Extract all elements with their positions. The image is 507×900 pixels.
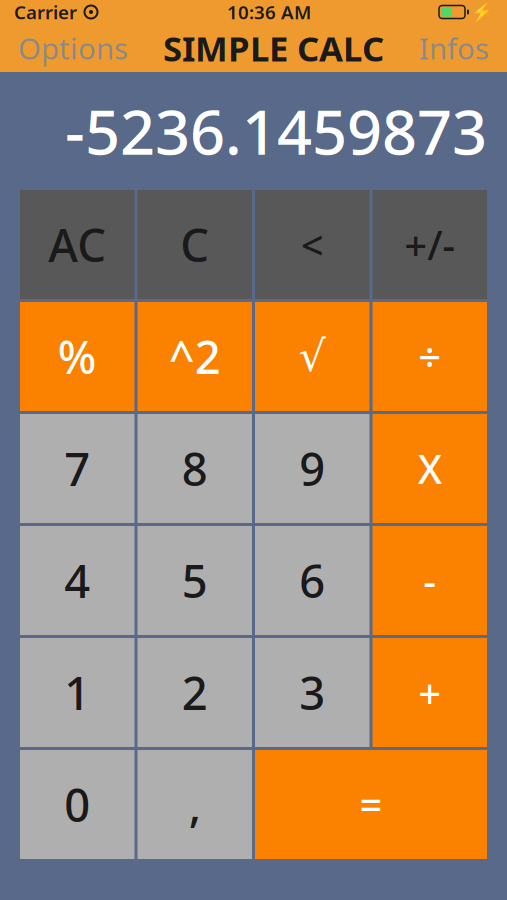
staticText: 0 (64, 774, 90, 835)
staticText: 1 (64, 662, 90, 723)
staticText: +/- (404, 218, 455, 271)
staticText: 4 (64, 550, 90, 611)
staticText: SIMPLE CALC (163, 25, 384, 71)
staticText: ÷ (418, 330, 441, 383)
staticText: , (189, 774, 201, 835)
button[interactable]: 1 (20, 638, 134, 747)
staticText: ⚡ (471, 2, 493, 22)
button[interactable]: 2 (137, 638, 252, 747)
button[interactable]: = (255, 750, 487, 859)
staticText: X (418, 442, 442, 495)
staticText: Carrier (14, 0, 77, 24)
button[interactable]: 9 (255, 414, 369, 523)
staticText: ^2 (169, 326, 221, 387)
button[interactable]: 7 (20, 414, 134, 523)
staticText: 6 (299, 550, 325, 611)
staticText: 8 (182, 438, 208, 499)
staticText: = (359, 778, 382, 831)
button[interactable]: 8 (137, 414, 252, 523)
staticText: Infos (419, 28, 489, 67)
staticText: + (418, 666, 441, 719)
staticText: 9 (299, 438, 325, 499)
button[interactable]: 5 (137, 526, 252, 635)
button[interactable]: + (372, 638, 487, 747)
button[interactable]: AC (20, 190, 134, 299)
staticText: - (423, 554, 436, 607)
staticText: 7 (64, 438, 90, 499)
staticText: Options (18, 28, 128, 67)
staticText: √ (299, 332, 326, 381)
button[interactable]: Infos (401, 26, 507, 70)
staticText: 3 (299, 662, 325, 723)
staticText: -5236.1459873 (65, 90, 487, 172)
button[interactable]: - (372, 526, 487, 635)
button[interactable]: √ (255, 302, 369, 411)
button[interactable]: ÷ (372, 302, 487, 411)
button[interactable]: % (20, 302, 134, 411)
button[interactable]: 3 (255, 638, 369, 747)
staticText: < (301, 218, 324, 271)
staticText: C (180, 214, 209, 275)
staticText: 2 (182, 662, 208, 723)
button[interactable]: +/- (372, 190, 487, 299)
button[interactable]: Options (0, 26, 146, 70)
button[interactable]: 0 (20, 750, 134, 859)
staticText: 10:36 AM (227, 0, 311, 24)
button[interactable]: < (255, 190, 369, 299)
staticText: % (58, 326, 97, 387)
staticText: AC (48, 214, 106, 275)
button[interactable]: 4 (20, 526, 134, 635)
staticText: 5 (182, 550, 208, 611)
button[interactable]: X (372, 414, 487, 523)
button[interactable]: 6 (255, 526, 369, 635)
button[interactable]: C (137, 190, 252, 299)
button[interactable]: , (137, 750, 252, 859)
button[interactable]: ^2 (137, 302, 252, 411)
